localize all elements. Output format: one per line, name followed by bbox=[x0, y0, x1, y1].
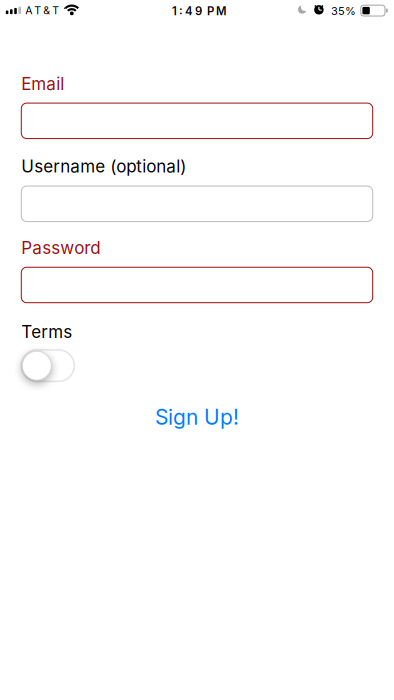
textField[interactable] bbox=[21, 106, 373, 136]
staticText: Email bbox=[21, 73, 64, 94]
staticText: Terms bbox=[21, 321, 72, 342]
textField[interactable] bbox=[21, 270, 373, 300]
staticText: 1 : 4 9 P M bbox=[172, 4, 227, 18]
button[interactable]: Terms bbox=[21, 350, 74, 381]
staticText: Sign Up! bbox=[155, 404, 239, 430]
staticText: Password bbox=[21, 237, 100, 258]
staticText: A T & T bbox=[25, 4, 59, 17]
staticText: Username (optional) bbox=[21, 156, 186, 177]
button[interactable]: Sign Up! bbox=[155, 404, 239, 430]
staticText: 35% bbox=[331, 4, 356, 18]
textField[interactable] bbox=[21, 189, 373, 219]
